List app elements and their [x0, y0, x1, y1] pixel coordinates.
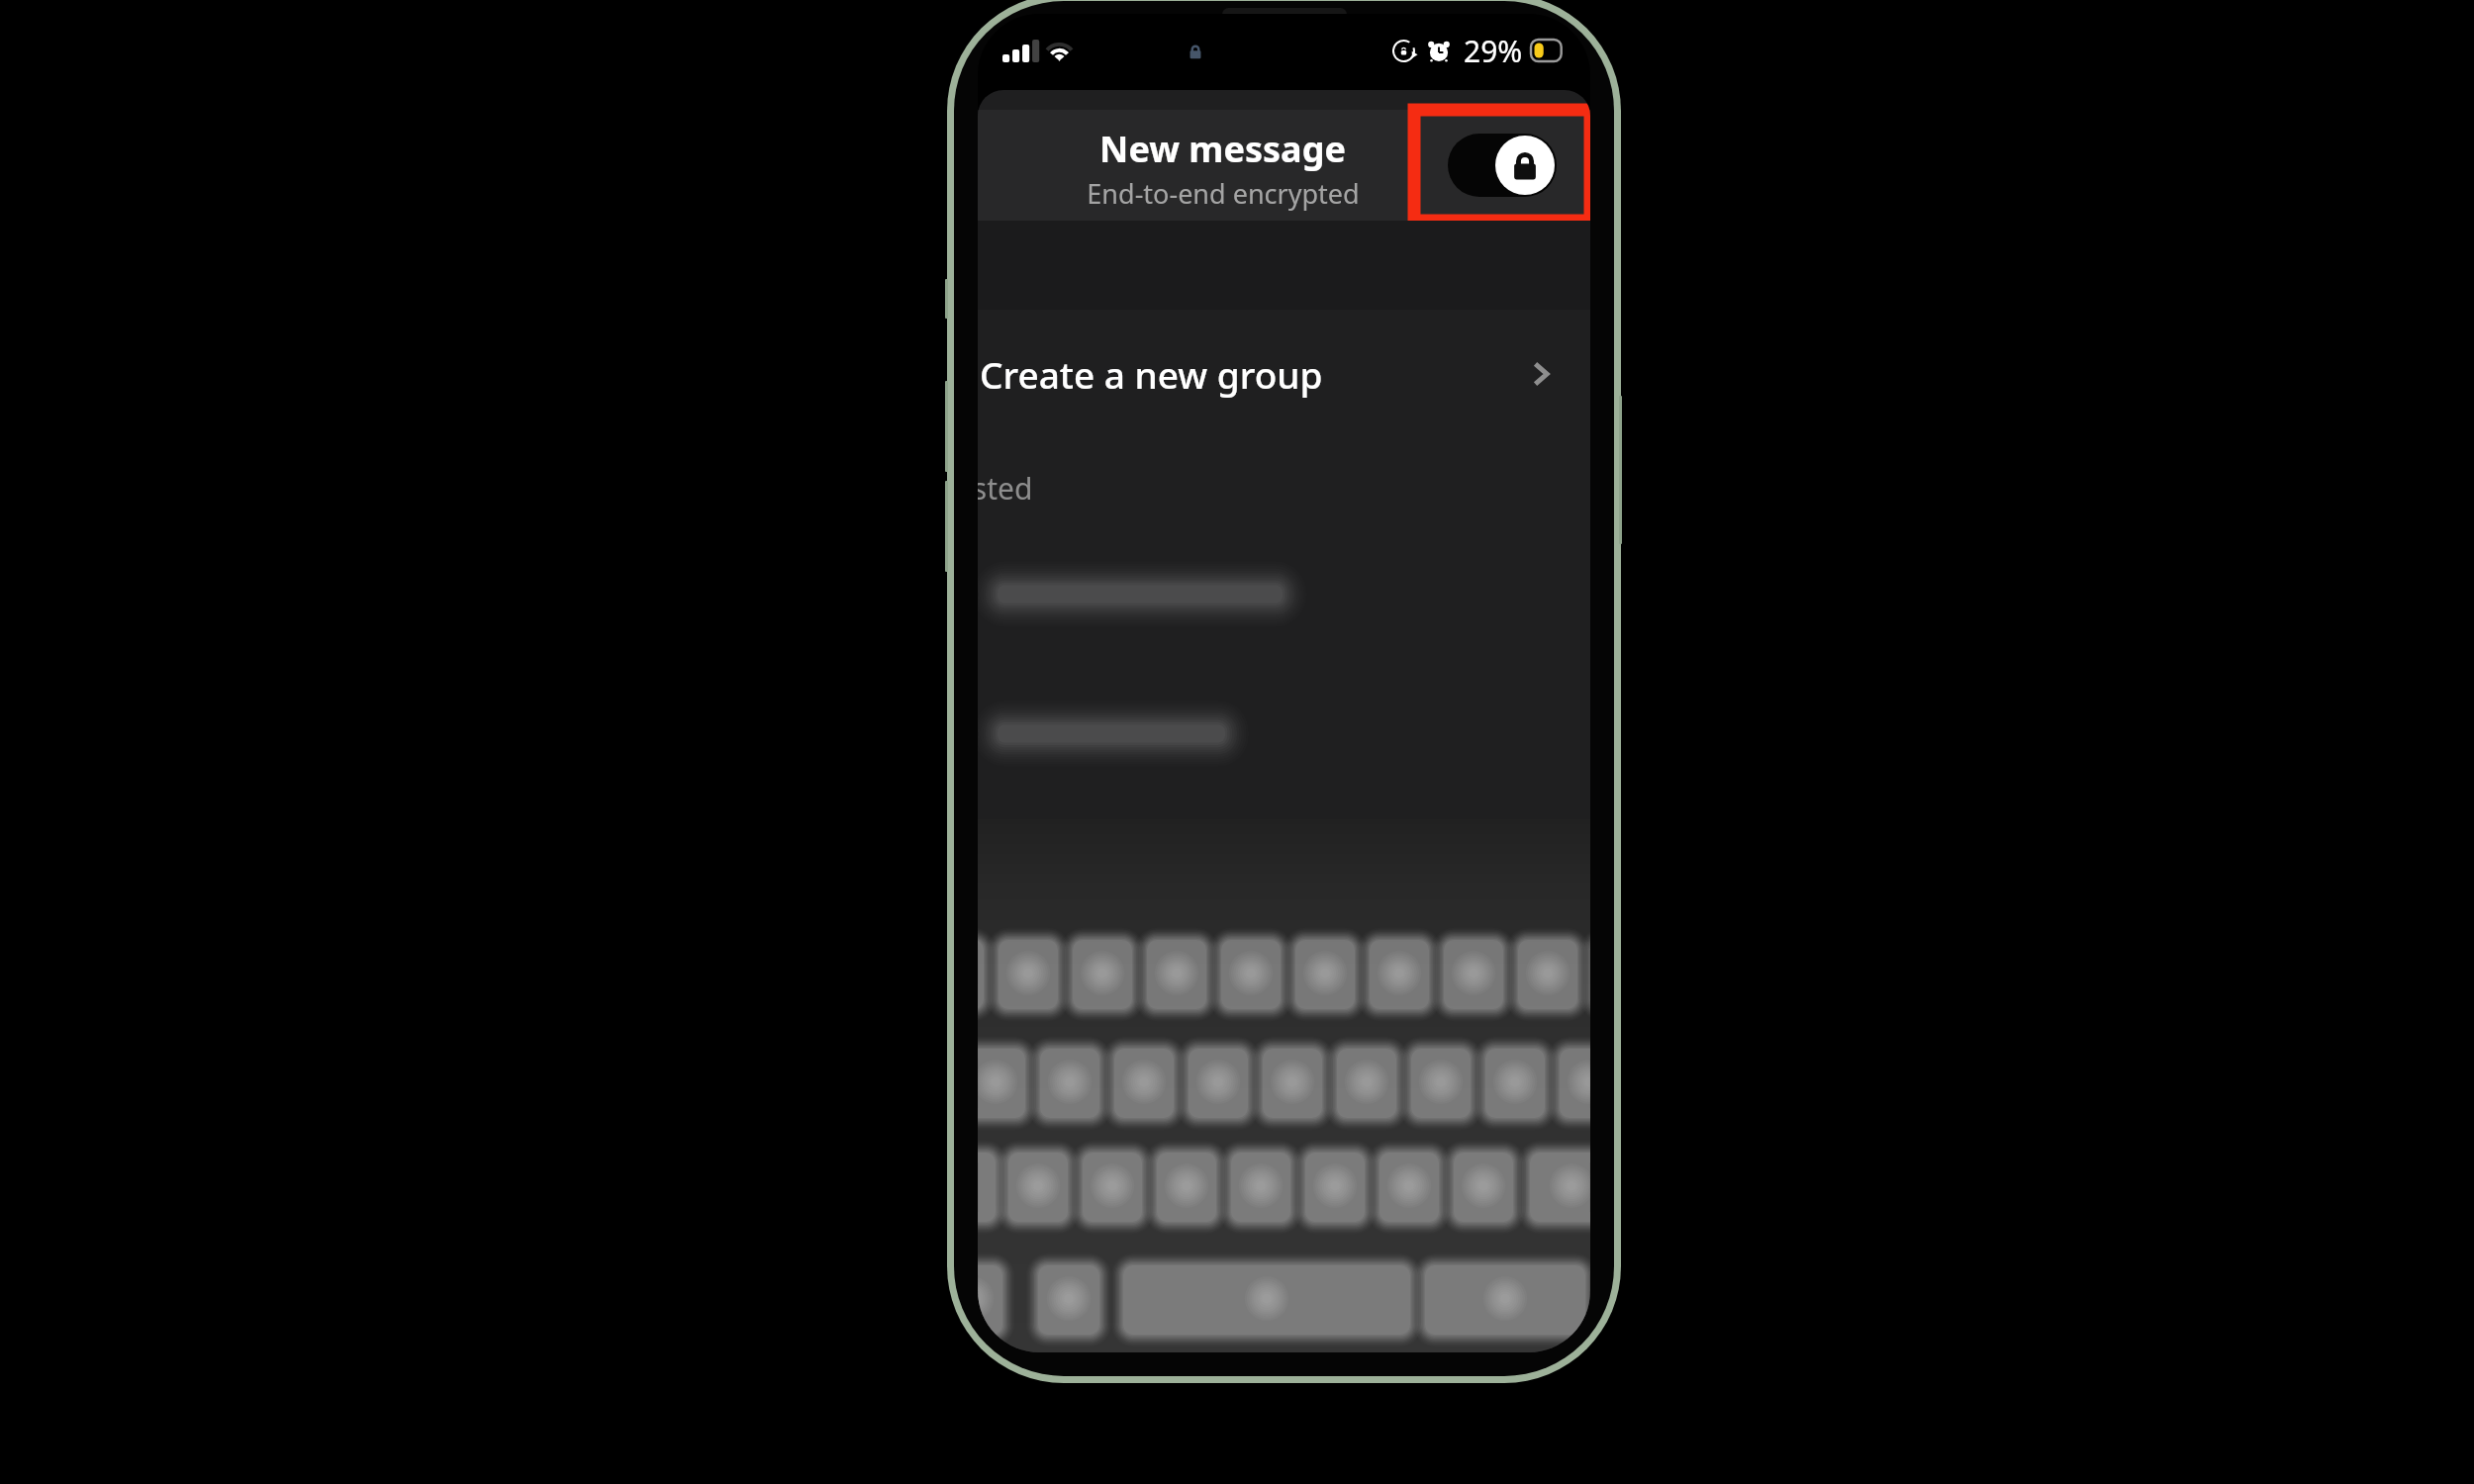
staticText: End-to-end encrypted: [1087, 175, 1360, 212]
staticText: Create a new group: [980, 349, 1323, 399]
button[interactable]: Suggested contact: [978, 664, 1590, 803]
staticText: New message: [1099, 125, 1346, 173]
button[interactable]: Suggested contact: [978, 524, 1590, 664]
button[interactable]: Create a new group: [978, 346, 1590, 402]
button[interactable]: Toggle end-to-end encryption: [1414, 110, 1590, 221]
staticText: Suggested: [978, 468, 1033, 500]
staticText: 29%: [1464, 31, 1523, 71]
